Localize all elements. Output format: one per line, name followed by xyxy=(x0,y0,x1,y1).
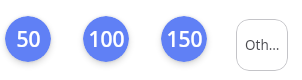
staticText: 150 xyxy=(166,25,203,54)
button[interactable]: 150 xyxy=(161,16,207,62)
button[interactable]: Oth… xyxy=(236,19,288,71)
button[interactable]: 50 xyxy=(5,16,51,62)
button[interactable]: 100 xyxy=(83,16,129,62)
staticText: 100 xyxy=(88,25,125,54)
staticText: 50 xyxy=(16,25,41,54)
staticText: Oth… xyxy=(245,36,280,54)
